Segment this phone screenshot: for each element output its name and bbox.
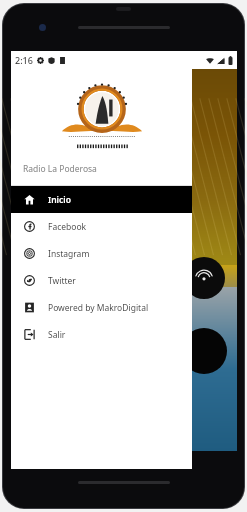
staticText: Twitter	[48, 275, 76, 287]
staticText: Powered by MakroDigital	[48, 302, 149, 314]
button[interactable]: Broadcast	[183, 257, 225, 299]
button[interactable]: Powered by MakroDigital	[11, 294, 192, 321]
button[interactable]: Inicio	[11, 186, 192, 213]
staticText: Instagram	[48, 248, 90, 260]
staticText: Facebook	[48, 221, 87, 233]
button[interactable]: Salir	[11, 321, 192, 348]
button[interactable]: Facebook	[11, 213, 192, 240]
staticText: 2:16	[15, 54, 33, 66]
staticText: Inicio	[48, 194, 71, 206]
staticText: Salir	[48, 329, 66, 341]
staticText: Radio La Poderosa	[23, 163, 97, 175]
button[interactable]	[181, 328, 227, 374]
button[interactable]: Twitter	[11, 267, 192, 294]
button[interactable]: Instagram	[11, 240, 192, 267]
